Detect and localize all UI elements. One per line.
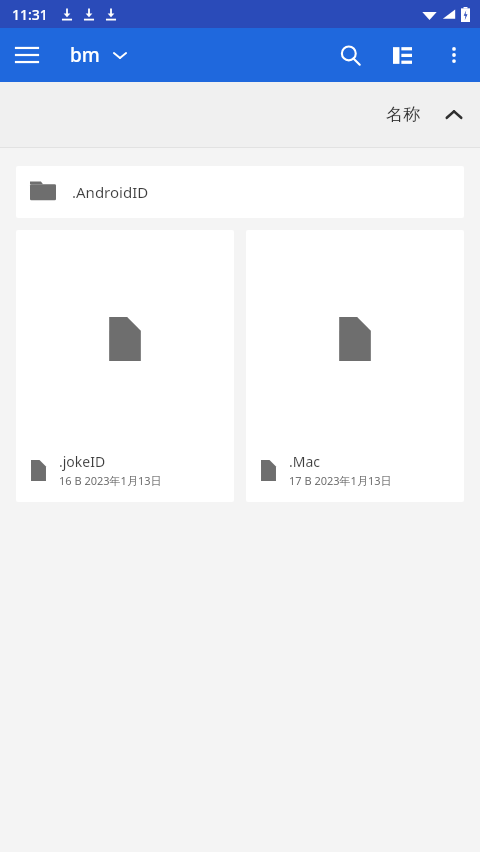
button[interactable]: Open navigation drawer <box>0 28 54 82</box>
staticText: 16 B 2023年1月13日 <box>59 473 162 488</box>
staticText: 17 B 2023年1月13日 <box>289 473 392 488</box>
staticText: .jokeID <box>59 452 106 471</box>
staticText: 名称 <box>386 104 420 125</box>
button[interactable]: Switch to list view <box>376 29 428 81</box>
button[interactable]: .jokeID <box>16 230 234 502</box>
button[interactable]: .AndroidID <box>16 166 464 218</box>
button[interactable]: 名称 <box>370 94 480 135</box>
staticText: .Mac <box>289 452 321 471</box>
button[interactable]: bm <box>70 34 128 76</box>
button[interactable]: More options <box>428 29 480 81</box>
staticText: .AndroidID <box>72 182 149 202</box>
staticText: bm <box>70 42 100 68</box>
button[interactable]: Search <box>324 29 376 81</box>
button[interactable]: .Mac <box>246 230 464 502</box>
staticText: 11:31 <box>12 5 48 24</box>
